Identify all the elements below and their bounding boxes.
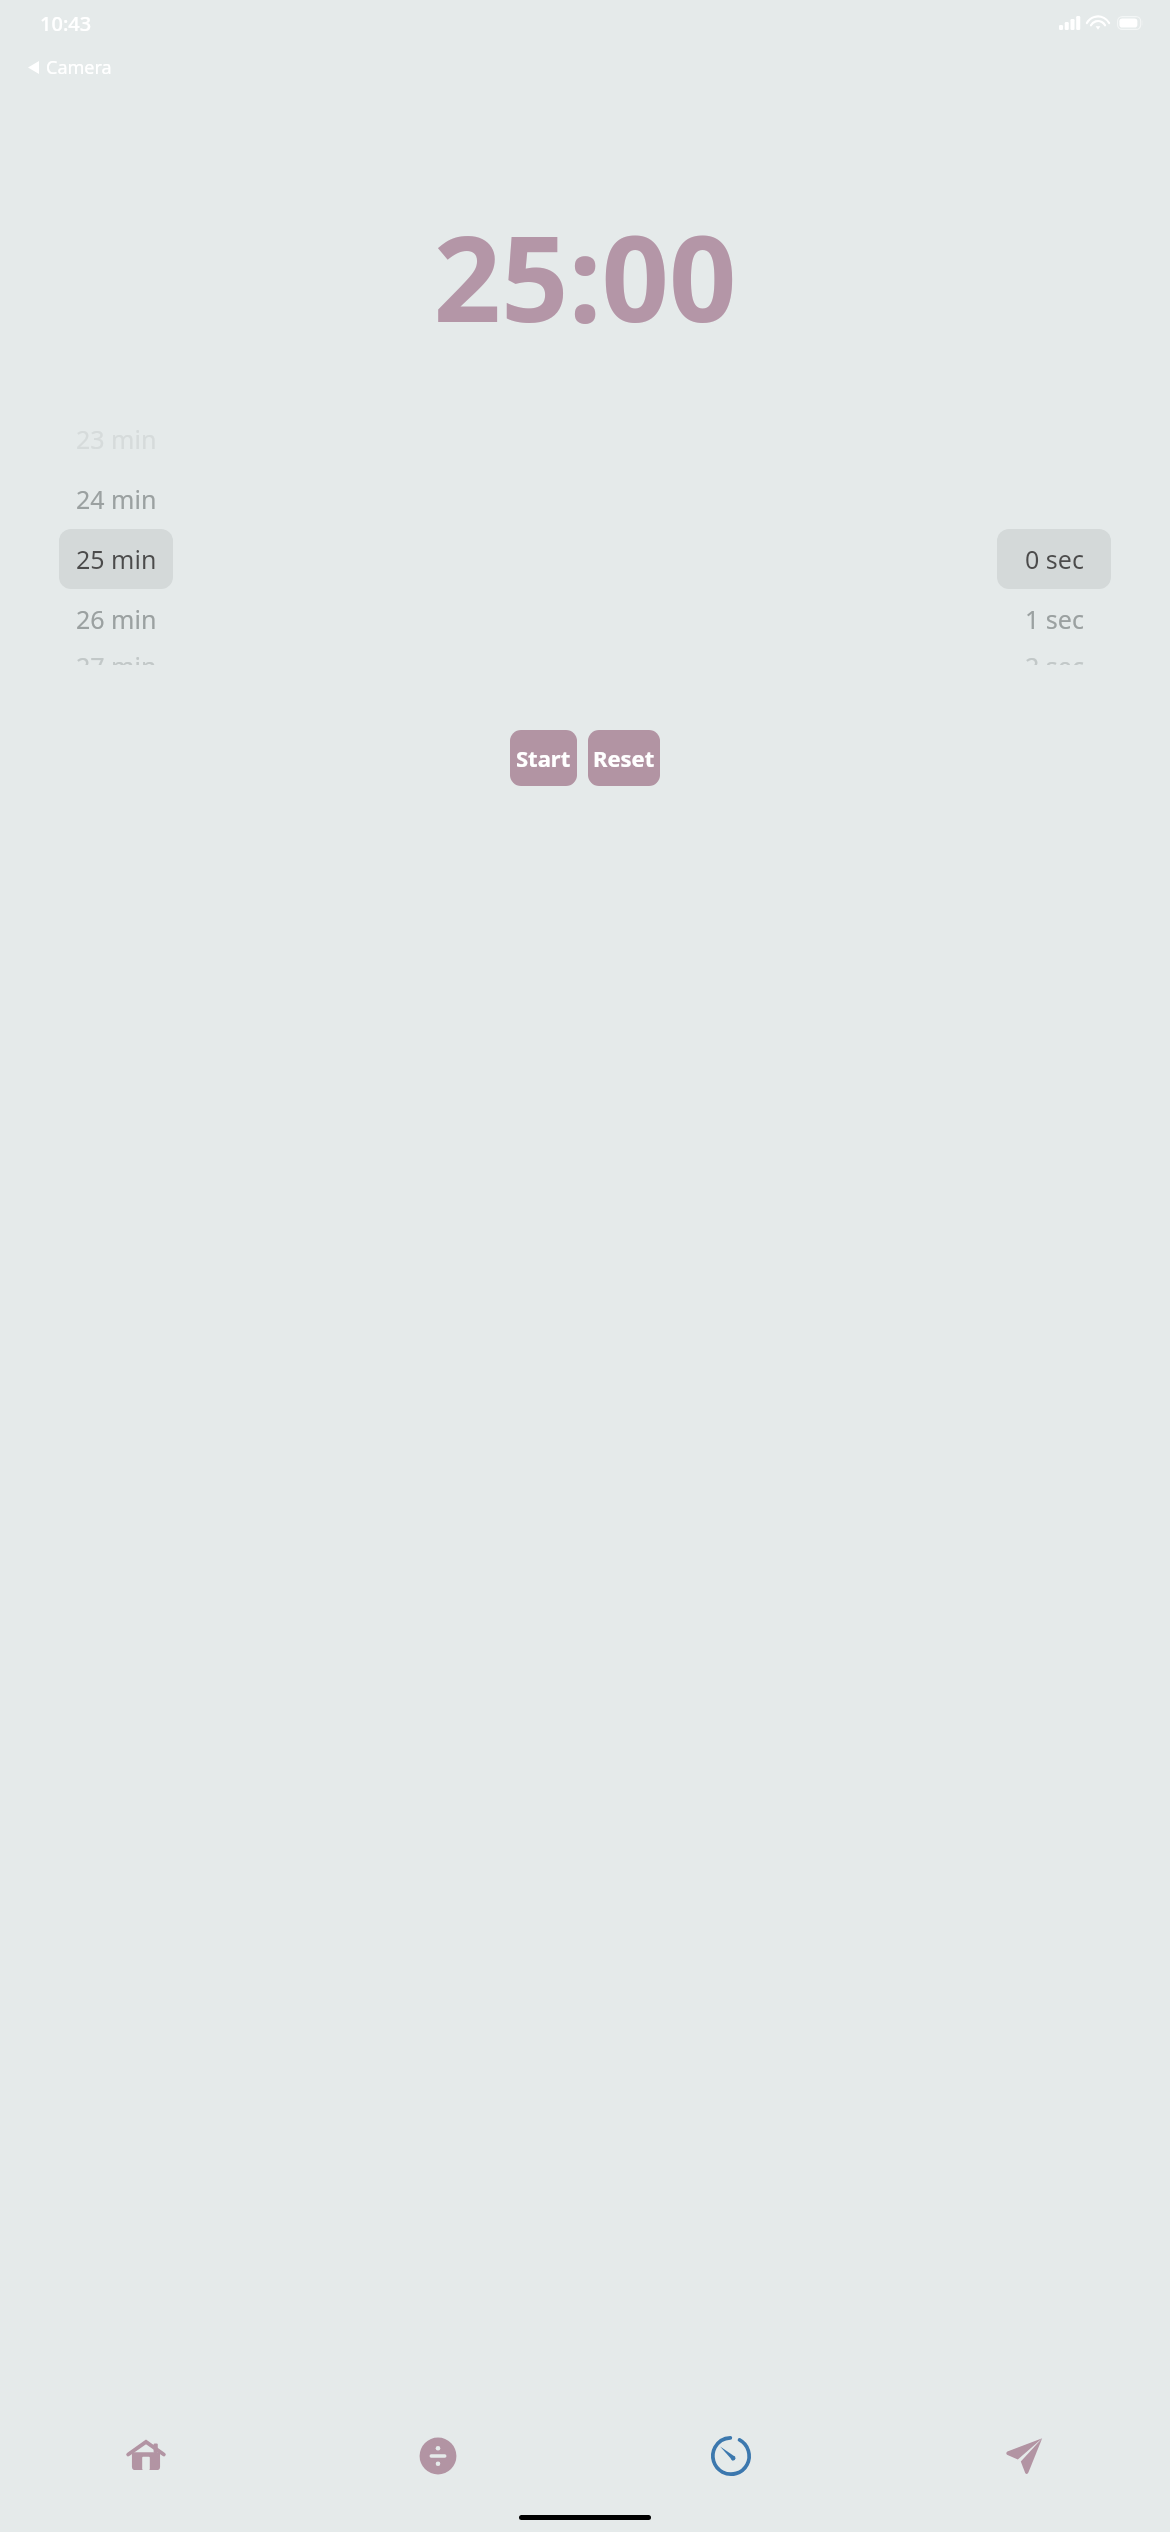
button[interactable]: Reset — [588, 730, 660, 786]
button[interactable]: Home — [0, 2424, 292, 2488]
staticText: 23 min — [76, 422, 157, 456]
staticText: 25 min — [76, 542, 157, 576]
button[interactable]: 27 min — [59, 649, 173, 665]
button[interactable]: 26 min — [59, 589, 173, 649]
staticText: 1 sec — [1025, 602, 1084, 636]
button[interactable]: Divide — [292, 2424, 584, 2488]
staticText: 25:00 — [433, 196, 737, 357]
staticText: 27 min — [76, 649, 157, 665]
staticText: 0 sec — [1025, 542, 1084, 576]
staticText: 24 min — [76, 482, 157, 516]
staticText: Camera — [46, 55, 112, 80]
staticText: 26 min — [76, 602, 157, 636]
button[interactable]: Start — [510, 730, 577, 786]
button[interactable]: 23 min — [59, 409, 173, 469]
button[interactable]: Timer — [584, 2424, 877, 2488]
staticText: Start — [516, 743, 571, 773]
staticText: 2 sec — [1025, 649, 1084, 665]
button[interactable]: 2 sec — [997, 649, 1111, 665]
button[interactable]: Camera — [24, 52, 116, 83]
button[interactable]: 24 min — [59, 469, 173, 529]
button[interactable]: Send — [877, 2424, 1170, 2488]
staticText: 10:43 — [40, 10, 92, 37]
button[interactable]: 0 sec — [997, 529, 1111, 589]
button[interactable]: 1 sec — [997, 589, 1111, 649]
staticText: Reset — [593, 743, 655, 773]
button[interactable]: 25 min — [59, 529, 173, 589]
